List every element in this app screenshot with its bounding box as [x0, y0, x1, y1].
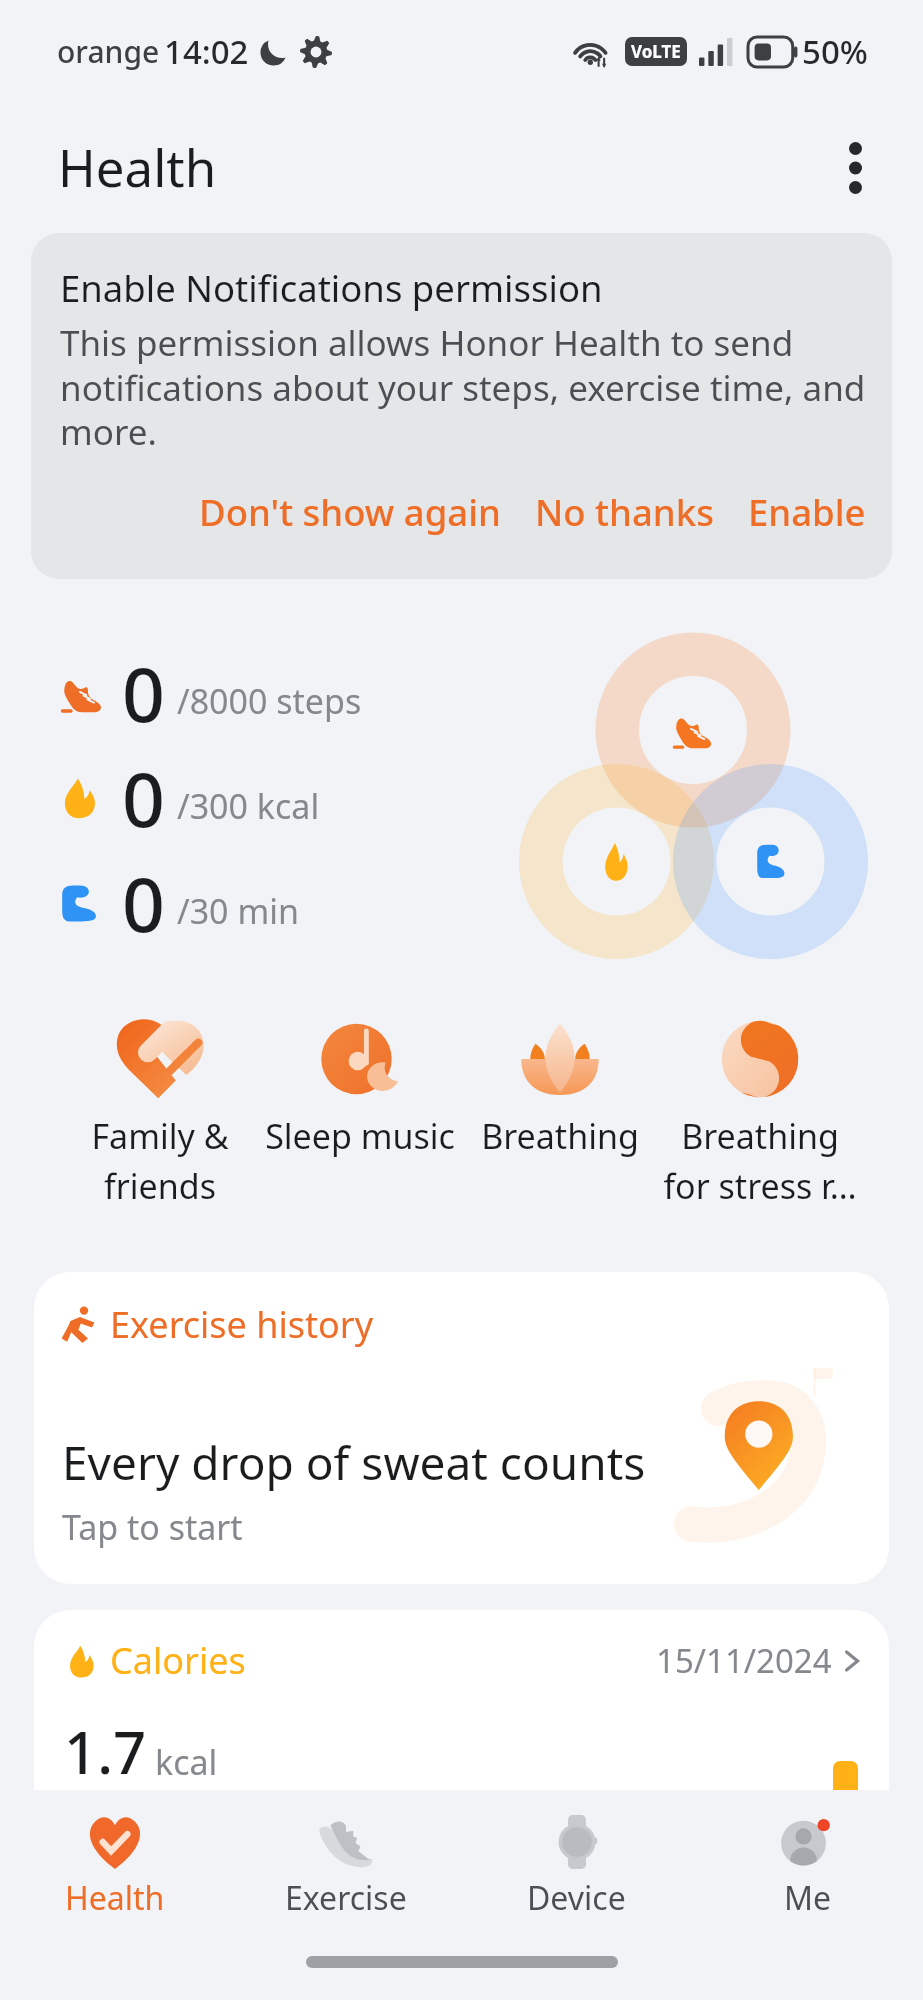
staticText: 15/11/2024 [656, 1638, 832, 1683]
button[interactable]: Sleep music [260, 1019, 460, 1159]
button[interactable]: No thanks [531, 481, 718, 543]
staticText: Don't show again [199, 487, 501, 537]
staticText: This permission allows Honor Health to s… [60, 319, 870, 455]
button[interactable]: Breathing for stress r… [660, 1019, 860, 1209]
staticText: Enable [748, 487, 866, 537]
staticText: Enable Notifications permission [60, 263, 603, 313]
staticText: Breathing for stress r… [663, 1113, 857, 1209]
staticText: Every drop of sweat counts [62, 1431, 646, 1494]
staticText: Health [65, 1876, 165, 1920]
staticText: No thanks [535, 487, 714, 537]
staticText: /8000 steps [177, 678, 362, 724]
staticText: Exercise history [110, 1300, 374, 1349]
staticText: Breathing [481, 1113, 639, 1159]
button[interactable]: Me [692, 1790, 923, 1942]
staticText: Calories [110, 1636, 246, 1685]
staticText: Exercise [285, 1876, 407, 1920]
staticText: Sleep music [265, 1113, 455, 1159]
staticText: 0 [122, 747, 165, 849]
staticText: VoLTE [631, 40, 681, 63]
staticText: Health [58, 132, 217, 201]
staticText: kcal [155, 1739, 218, 1785]
button[interactable]: Don't show again [195, 481, 505, 543]
staticText: 1.7 [64, 1712, 147, 1791]
button[interactable]: Exercise [230, 1790, 461, 1942]
button[interactable]: Exercise history [34, 1272, 889, 1584]
button[interactable]: Device [461, 1790, 692, 1942]
button[interactable]: More options [823, 136, 887, 200]
staticText: 0 [122, 852, 165, 954]
button[interactable]: Health [0, 1790, 230, 1942]
staticText: 0 [122, 642, 165, 744]
staticText: 50% [802, 29, 868, 74]
staticText: Tap to start [62, 1504, 243, 1550]
button[interactable]: Breathing [460, 1019, 660, 1159]
staticText: /300 kcal [177, 783, 320, 829]
staticText: /30 min [177, 888, 299, 934]
staticText: Family & friends [91, 1113, 229, 1209]
staticText: Me [784, 1876, 832, 1920]
staticText: 14:02 [164, 29, 249, 74]
staticText: orange [57, 31, 160, 72]
button[interactable]: Family & friends [60, 1019, 260, 1209]
staticText: Device [527, 1876, 626, 1920]
button[interactable]: Enable [744, 481, 870, 543]
button[interactable]: Calories [34, 1610, 889, 1840]
